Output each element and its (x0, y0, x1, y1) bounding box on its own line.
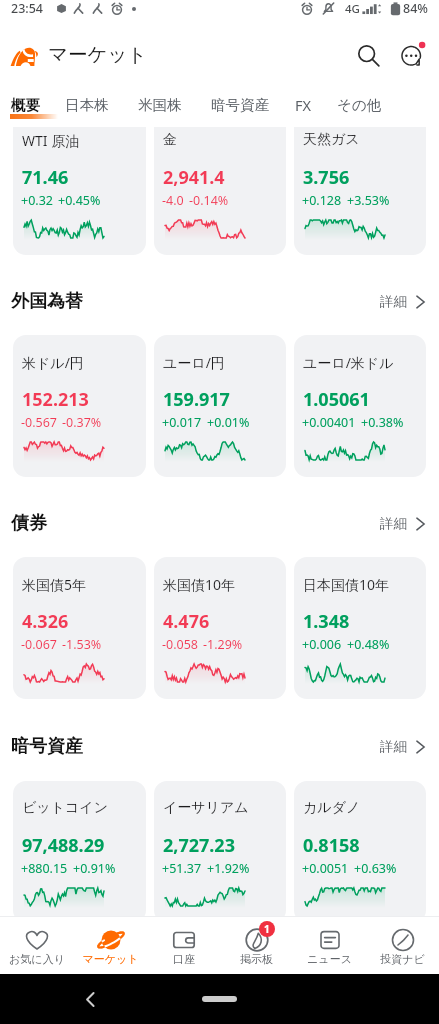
staticText: +880.15 (21, 860, 68, 877)
button[interactable]: 暗号資産 (211, 82, 269, 127)
staticText: 米国債10年 (163, 575, 236, 594)
staticText: 2,727.23 (163, 833, 235, 858)
staticText: 1.05061 (303, 387, 370, 412)
button[interactable]: ユーロ/米ドル (294, 335, 426, 477)
staticText: その他 (337, 96, 382, 114)
staticText: 1 (264, 922, 270, 936)
staticText: 71.46 (22, 165, 69, 190)
staticText: 口座 (173, 952, 195, 966)
staticText: ビットコイン (22, 799, 108, 817)
staticText: +0.017 (162, 414, 202, 431)
staticText: -0.37% (62, 414, 102, 431)
button[interactable]: 米国債5年 (13, 557, 146, 699)
staticText: +1.92% (207, 860, 250, 877)
staticText: ユーロ/円 (163, 353, 225, 372)
staticText: -0.058 (162, 636, 198, 653)
staticText: 97,488.29 (22, 833, 105, 858)
staticText: 暗号資産 (11, 735, 83, 758)
staticText: -0.067 (21, 636, 57, 653)
staticText: +51.37 (162, 860, 202, 877)
staticText: 詳細 (380, 738, 407, 755)
button[interactable]: 天然ガス (294, 113, 426, 255)
staticText: +0.006 (302, 636, 342, 653)
staticText: ニュース (307, 952, 352, 966)
staticText: 1.348 (303, 609, 350, 634)
staticText: 152.213 (22, 387, 89, 412)
staticText: ユーロ/米ドル (303, 353, 394, 372)
staticText: +0.0051 (302, 860, 349, 877)
button[interactable]: 詳細 (374, 505, 425, 538)
staticText: FX (295, 95, 312, 115)
button[interactable]: ビットコイン (13, 781, 146, 923)
staticText: +0.63% (354, 860, 397, 877)
staticText: 3.756 (303, 165, 350, 190)
button[interactable]: 日本国債10年 (294, 557, 426, 699)
button[interactable]: 口座 (147, 917, 220, 974)
button[interactable]: マーケット (74, 917, 147, 974)
staticText: +0.128 (302, 192, 342, 209)
staticText: -1.29% (203, 636, 243, 653)
staticText: WTI 原油 (22, 131, 80, 150)
staticText: 概要 (11, 96, 40, 114)
staticText: 外国為替 (11, 290, 83, 313)
button[interactable]: 詳細 (374, 283, 425, 316)
button[interactable]: お気に入り (0, 917, 74, 974)
staticText: 23:54 (11, 0, 44, 17)
button[interactable]: Home (202, 996, 237, 1002)
staticText: 4.326 (22, 609, 69, 634)
button[interactable]: イーサリアム (154, 781, 286, 923)
staticText: 金 (163, 131, 177, 149)
staticText: +0.48% (347, 636, 390, 653)
button[interactable]: 概要 (11, 82, 40, 127)
staticText: 159.917 (163, 387, 230, 412)
button[interactable]: カルダノ (294, 781, 426, 923)
staticText: 米ドル/円 (22, 353, 84, 372)
button[interactable]: 米国株 (138, 82, 182, 127)
staticText: 詳細 (380, 293, 407, 310)
staticText: 0.8158 (303, 833, 360, 858)
staticText: イーサリアム (163, 799, 249, 817)
staticText: -0.14% (189, 192, 229, 209)
button[interactable]: 投資ナビ (366, 917, 439, 974)
staticText: 2,941.4 (163, 165, 225, 190)
staticText: 日本国債10年 (303, 575, 390, 594)
staticText: マーケット (82, 952, 139, 966)
staticText: +0.38% (361, 414, 404, 431)
button[interactable]: 米ドル/円 (13, 335, 146, 477)
staticText: 詳細 (380, 515, 407, 532)
staticText: +0.45% (58, 192, 101, 209)
button[interactable]: ニュース (293, 917, 366, 974)
button[interactable]: 詳細 (374, 728, 425, 761)
staticText: お気に入り (9, 952, 65, 966)
staticText: +0.01% (207, 414, 250, 431)
staticText: 債券 (11, 512, 47, 535)
staticText: +3.53% (347, 192, 390, 209)
button[interactable]: Messages (390, 33, 434, 77)
staticText: 4G (345, 1, 360, 17)
staticText: 天然ガス (303, 131, 360, 149)
button[interactable]: ユーロ/円 (154, 335, 286, 477)
button[interactable]: 1 (220, 917, 293, 974)
staticText: 暗号資産 (211, 96, 269, 114)
staticText: +0.00401 (302, 414, 356, 431)
staticText: 掲示板 (240, 952, 273, 966)
button[interactable]: WTI 原油 (13, 113, 146, 255)
staticText: 84% (403, 0, 428, 17)
staticText: マーケット (48, 42, 148, 67)
button[interactable]: Back (82, 991, 99, 1008)
staticText: +0.32 (21, 192, 53, 209)
button[interactable]: Search (346, 33, 390, 77)
staticText: 日本株 (65, 96, 109, 114)
button[interactable]: その他 (337, 82, 382, 127)
button[interactable]: FX (295, 82, 312, 127)
staticText: 米国株 (138, 96, 182, 114)
staticText: +0.91% (73, 860, 116, 877)
button[interactable]: 金 (154, 113, 286, 255)
button[interactable]: 米国債10年 (154, 557, 286, 699)
button[interactable]: 日本株 (65, 82, 109, 127)
staticText: -1.53% (62, 636, 102, 653)
staticText: 投資ナビ (380, 952, 425, 966)
staticText: 4.476 (163, 609, 210, 634)
staticText: カルダノ (303, 799, 361, 817)
staticText: -0.567 (21, 414, 57, 431)
